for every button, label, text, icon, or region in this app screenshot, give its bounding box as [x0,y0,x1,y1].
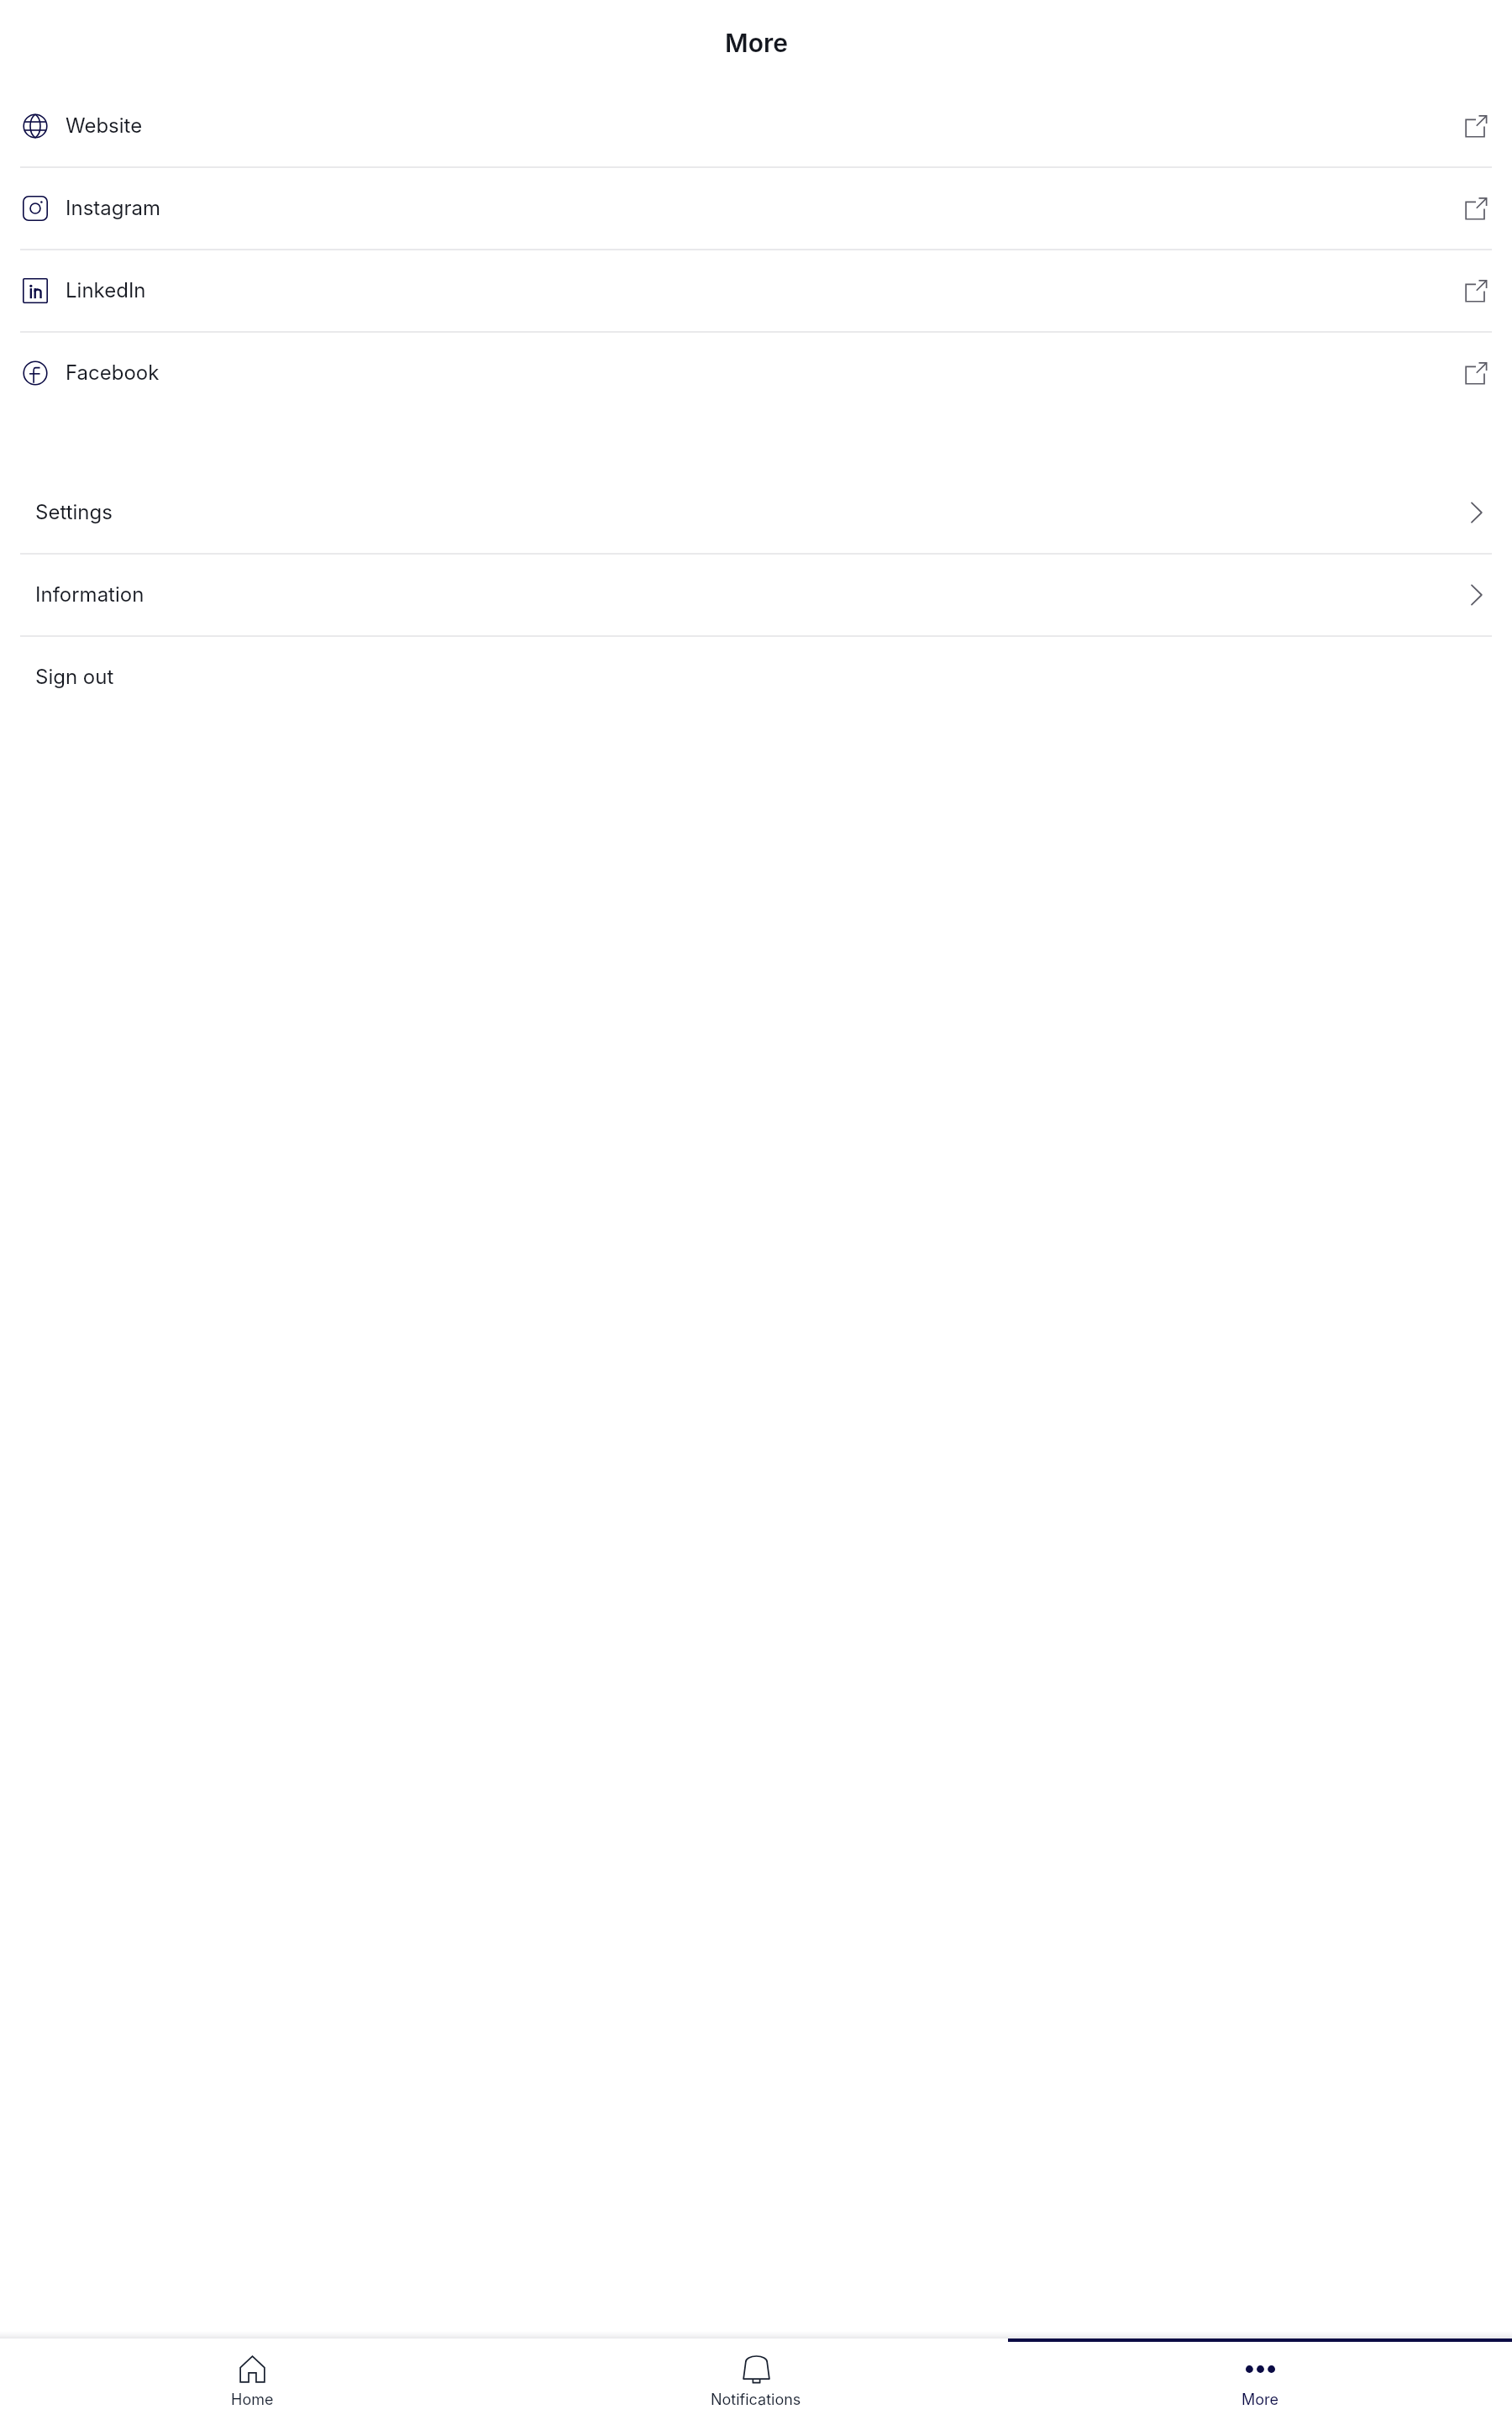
staticText: Sign out [35,665,114,689]
button[interactable]: LinkedIn [0,250,1512,331]
staticText: Settings [35,500,113,524]
button[interactable]: Settings [0,472,1512,553]
button[interactable]: Sign out [0,637,1512,718]
staticText: Instagram [66,196,160,220]
other: Open Instagram [1465,197,1487,219]
staticText: Notifications [711,2391,801,2409]
button[interactable]: More [1008,2338,1512,2420]
button[interactable]: Website [0,86,1512,166]
staticText: More [725,28,788,58]
staticText: Facebook [66,360,160,385]
other: Open LinkedIn [1465,280,1487,302]
staticText: LinkedIn [66,278,146,302]
staticText: Home [231,2391,274,2409]
other: Open Website [1465,115,1487,137]
staticText: More [1242,2391,1279,2409]
staticText: Information [35,582,144,607]
button[interactable]: Facebook [0,333,1512,413]
other: Open Facebook [1465,362,1487,384]
button[interactable]: Instagram [0,168,1512,249]
staticText: Website [66,113,143,138]
other: Open Settings [1461,502,1483,523]
other: Open Information [1461,584,1483,606]
button[interactable]: Home [0,2338,504,2420]
button[interactable]: Information [0,555,1512,635]
button[interactable]: Notifications [504,2338,1008,2420]
